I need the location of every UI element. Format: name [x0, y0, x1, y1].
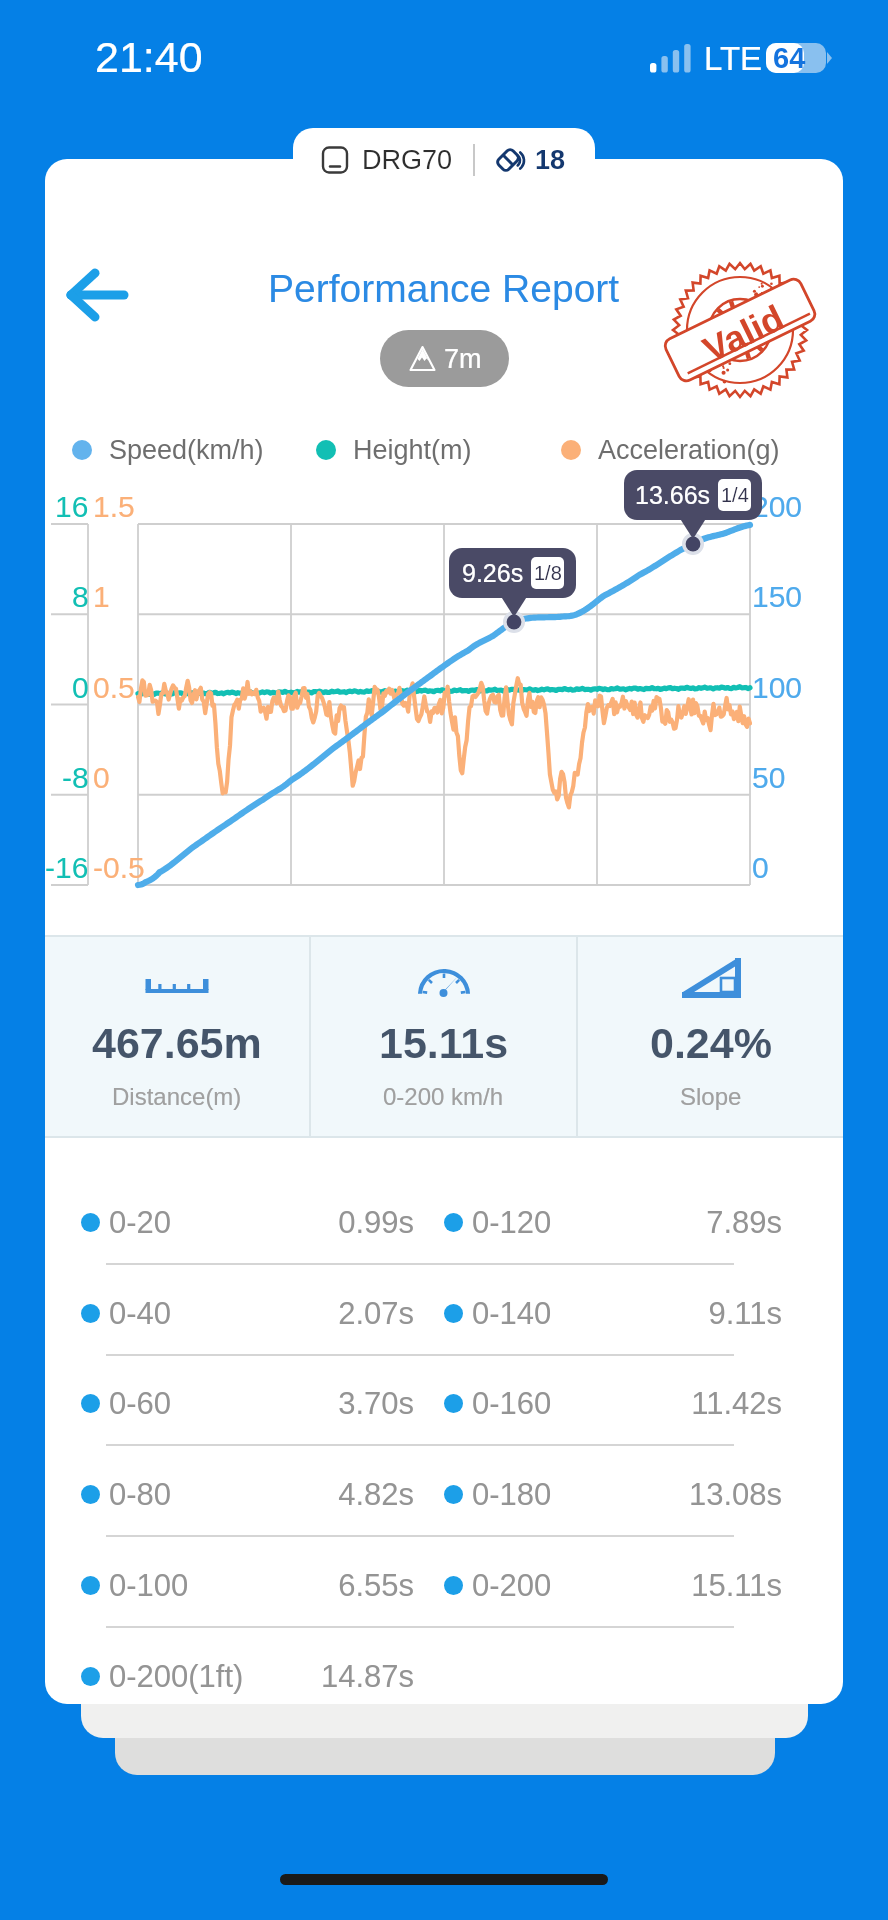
staticText: 0-200(1ft)	[109, 1659, 285, 1694]
staticText: Acceleration(g)	[598, 435, 780, 465]
staticText: 3.70s	[285, 1386, 414, 1421]
button[interactable]: 0.24%	[578, 937, 843, 1136]
staticText: Slope	[680, 1083, 742, 1110]
staticText: 0-80	[109, 1477, 285, 1512]
staticText: 0	[752, 851, 769, 885]
staticText: 0-100	[109, 1568, 285, 1603]
button[interactable]: 0-40	[45, 1268, 843, 1358]
staticText: 100	[752, 671, 803, 705]
staticText: 7m	[444, 344, 482, 374]
staticText: 467.65m	[92, 1019, 262, 1067]
staticText: -16	[45, 851, 89, 885]
button[interactable]: Back	[53, 257, 141, 333]
staticText: 15.11s	[644, 1568, 782, 1603]
staticText: 9.26s	[462, 559, 524, 587]
button[interactable]: 0-60	[45, 1358, 843, 1448]
staticText: 0-180	[472, 1477, 644, 1512]
staticText: 0	[72, 671, 89, 705]
staticText: 0-60	[109, 1386, 285, 1421]
button[interactable]: 0-100	[45, 1540, 843, 1630]
staticText: -8	[62, 761, 89, 795]
staticText: Performance Report	[268, 267, 620, 311]
staticText: 13.08s	[644, 1477, 782, 1512]
staticText: 16	[55, 490, 89, 524]
staticText: 0.99s	[285, 1205, 414, 1240]
staticText: 0-200	[472, 1568, 644, 1603]
staticText: 18	[535, 145, 566, 175]
staticText: 0.5	[93, 671, 135, 705]
staticText: 64	[773, 42, 806, 72]
staticText: 2.07s	[285, 1296, 414, 1331]
staticText: 21:40	[95, 33, 203, 81]
staticText: 0.24%	[650, 1019, 772, 1067]
staticText: Speed(km/h)	[109, 435, 264, 465]
staticText: Height(m)	[353, 435, 472, 465]
button[interactable]: 7m	[380, 330, 509, 387]
staticText: 150	[752, 580, 803, 614]
staticText: 13.66s	[635, 481, 711, 509]
staticText: LTE	[704, 40, 763, 77]
staticText: 1/4	[721, 484, 749, 506]
staticText: 1	[93, 580, 110, 614]
staticText: 200	[752, 490, 803, 524]
staticText: Distance(m)	[112, 1083, 242, 1110]
staticText: 14.87s	[285, 1659, 414, 1694]
staticText: 8	[72, 580, 89, 614]
staticText: 9.11s	[644, 1296, 782, 1331]
staticText: 0-140	[472, 1296, 644, 1331]
button[interactable]: 0-80	[45, 1449, 843, 1539]
staticText: 0-20	[109, 1205, 285, 1240]
staticText: 7.89s	[644, 1205, 782, 1240]
staticText: -0.5	[93, 851, 145, 885]
staticText: 6.55s	[285, 1568, 414, 1603]
button[interactable]: 467.65m	[45, 937, 309, 1136]
staticText: 0-120	[472, 1205, 644, 1240]
staticText: 11.42s	[644, 1386, 782, 1421]
staticText: DRG70	[362, 145, 453, 175]
button[interactable]: 0-200(1ft)	[45, 1631, 843, 1704]
staticText: 1.5	[93, 490, 135, 524]
button[interactable]: 15.11s	[311, 937, 576, 1136]
staticText: Valid	[696, 296, 790, 370]
staticText: 50	[752, 761, 786, 795]
staticText: 0	[93, 761, 110, 795]
button[interactable]: 0-20	[45, 1177, 843, 1267]
staticText: 0-40	[109, 1296, 285, 1331]
staticText: 0-200 km/h	[383, 1083, 504, 1110]
staticText: 0-160	[472, 1386, 644, 1421]
staticText: 15.11s	[379, 1019, 509, 1067]
staticText: 1/8	[534, 562, 562, 584]
staticText: 4.82s	[285, 1477, 414, 1512]
button[interactable]: DRG70	[293, 128, 595, 192]
